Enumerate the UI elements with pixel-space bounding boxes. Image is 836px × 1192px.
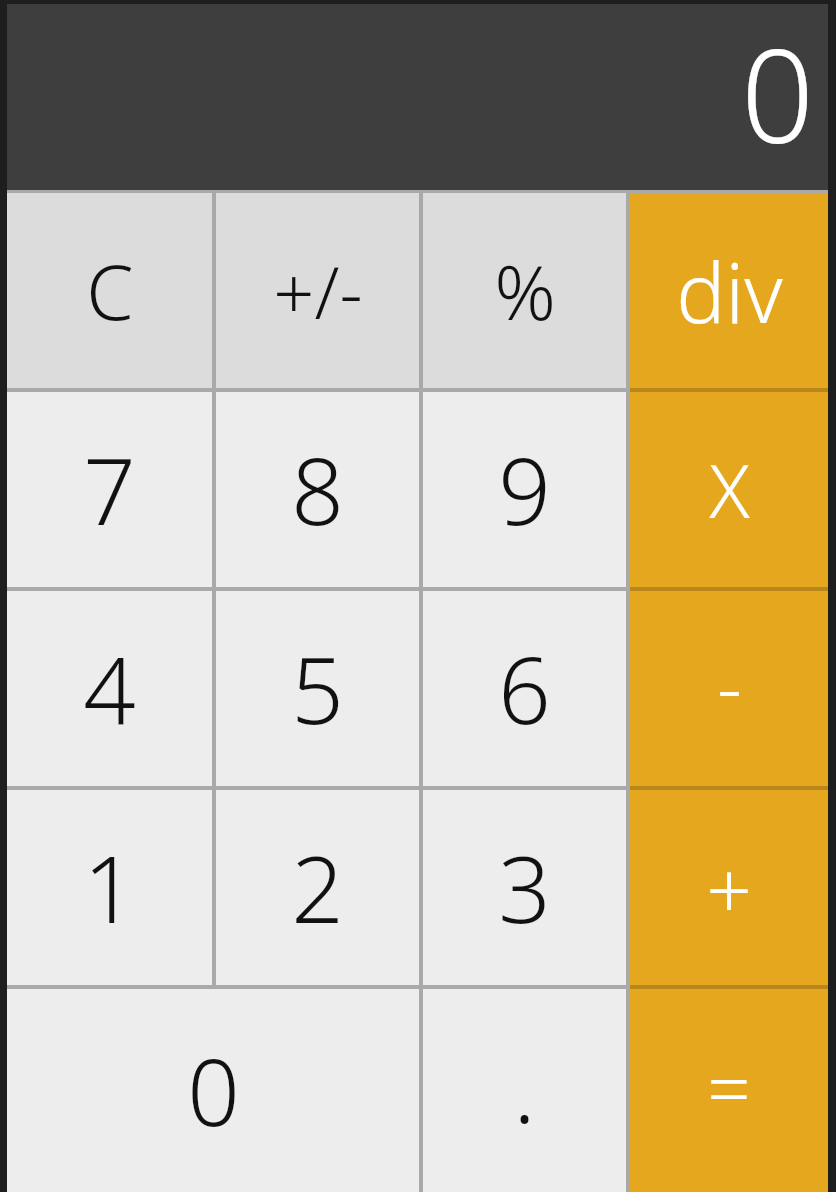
staticText: 0 [187, 1028, 240, 1153]
staticText: 8 [291, 427, 344, 552]
staticText: +/- [273, 242, 363, 340]
button[interactable]: 0 [7, 4, 828, 190]
button[interactable]: Subtract [630, 591, 828, 786]
button[interactable]: 6 [423, 591, 626, 786]
staticText: . [513, 1025, 536, 1150]
button[interactable]: 2 [216, 790, 419, 985]
button[interactable]: 1 [7, 790, 212, 985]
staticText: % [494, 239, 556, 343]
staticText: + [706, 833, 752, 942]
button[interactable]: 8 [216, 392, 419, 587]
staticText: 6 [498, 626, 551, 751]
button[interactable]: 9 [423, 392, 626, 587]
staticText: - [717, 633, 742, 737]
button[interactable]: div [630, 193, 828, 388]
button[interactable]: C [7, 193, 212, 388]
staticText: 0 [740, 6, 814, 180]
button[interactable]: 3 [423, 790, 626, 985]
staticText: 5 [291, 626, 344, 751]
button[interactable]: Add [630, 790, 828, 985]
button[interactable]: Decimal point [423, 989, 626, 1192]
button[interactable]: 7 [7, 392, 212, 587]
staticText: 2 [291, 825, 344, 950]
staticText: div [676, 235, 783, 347]
staticText: X [709, 439, 750, 540]
button[interactable]: 5 [216, 591, 419, 786]
button[interactable]: % [423, 193, 626, 388]
staticText: C [86, 239, 134, 343]
staticText: 1 [83, 825, 136, 950]
button[interactable]: +/- [216, 193, 419, 388]
button[interactable]: 4 [7, 591, 212, 786]
button[interactable]: Equals [630, 989, 828, 1192]
staticText: 9 [498, 427, 551, 552]
button[interactable]: Multiply [630, 392, 828, 587]
staticText: 4 [83, 626, 136, 751]
staticText: 3 [498, 825, 551, 950]
button[interactable]: 0 [7, 989, 419, 1192]
staticText: 7 [83, 427, 136, 552]
staticText: = [707, 1035, 751, 1139]
